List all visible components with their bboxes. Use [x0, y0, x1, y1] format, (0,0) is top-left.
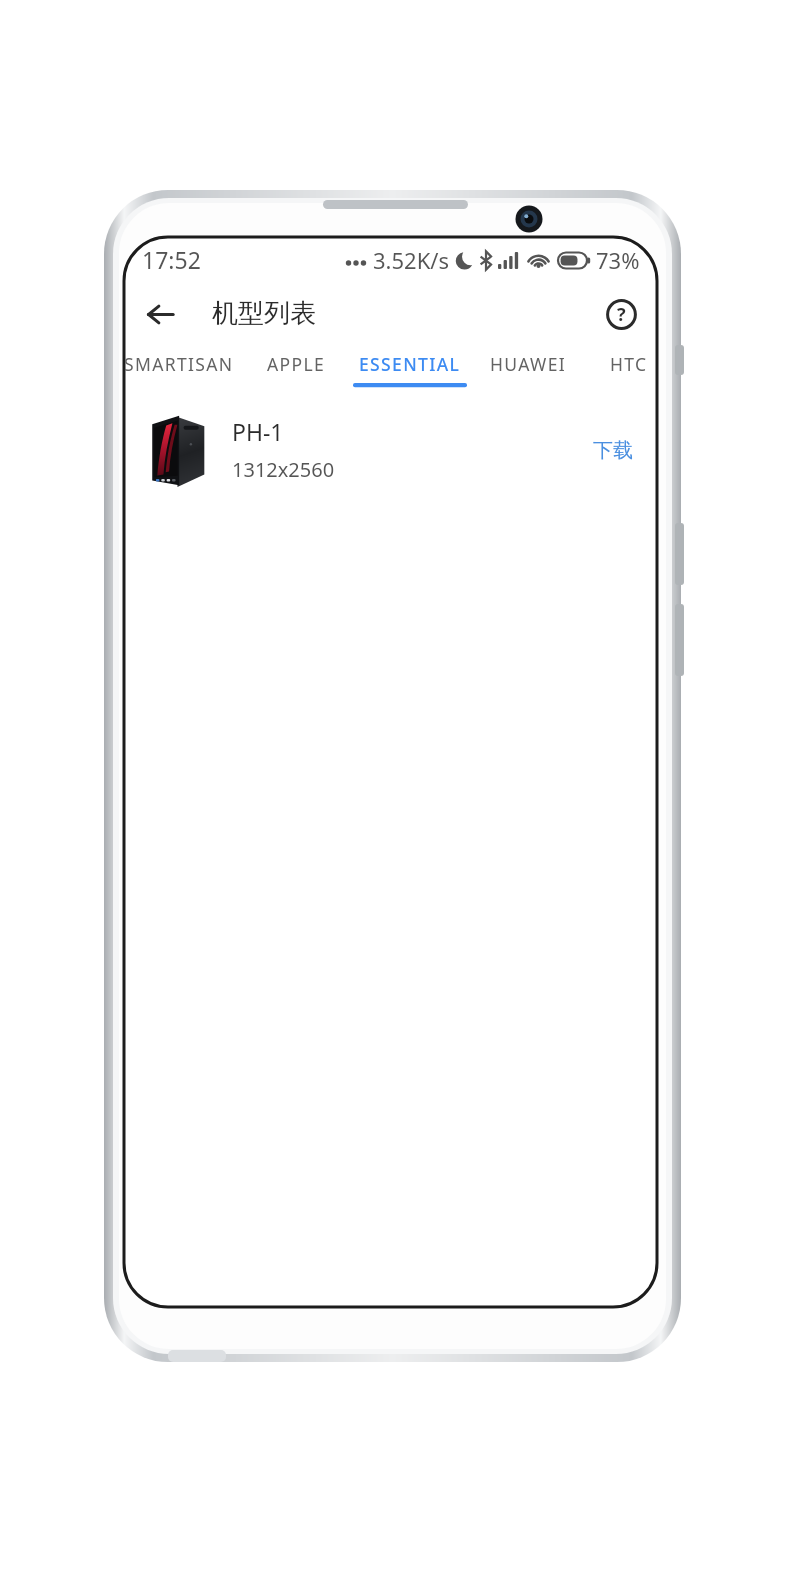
button[interactable]: APPLE: [250, 345, 342, 397]
staticText: PH-1: [232, 416, 284, 447]
staticText: 3.52K/s: [373, 245, 449, 275]
button[interactable]: PH-1: [124, 397, 657, 503]
button[interactable]: Help: [598, 291, 644, 337]
staticText: 73%: [596, 245, 640, 275]
staticText: HTC: [610, 352, 648, 376]
staticText: SMARTISAN: [124, 352, 234, 376]
button[interactable]: SMARTISAN: [113, 345, 245, 397]
staticText: 1312x2560: [232, 456, 335, 483]
staticText: ?: [617, 302, 626, 327]
staticText: HUAWEI: [490, 352, 567, 376]
button[interactable]: HUAWEI: [475, 345, 581, 397]
staticText: 机型列表: [212, 297, 316, 330]
button[interactable]: Back: [136, 290, 184, 338]
button[interactable]: HTC: [592, 345, 666, 397]
staticText: 17:52: [142, 244, 201, 275]
staticText: APPLE: [267, 352, 326, 376]
staticText: 下载: [593, 438, 633, 463]
button[interactable]: ESSENTIAL: [347, 345, 473, 397]
button[interactable]: 下载: [593, 438, 633, 463]
staticText: ESSENTIAL: [359, 352, 461, 376]
